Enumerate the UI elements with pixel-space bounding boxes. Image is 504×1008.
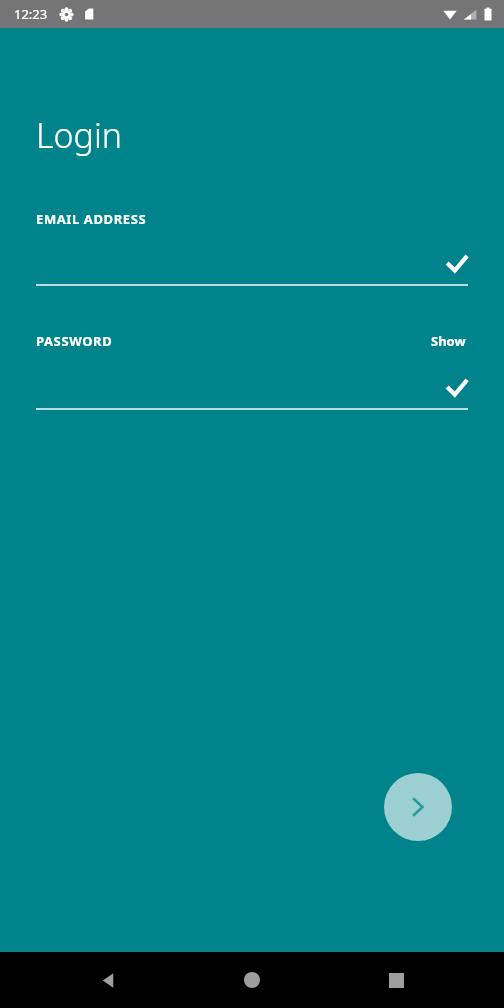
button[interactable]: Show (429, 330, 468, 352)
button[interactable] (36, 368, 468, 408)
staticText: EMAIL ADDRESS (36, 210, 147, 228)
staticText: 12:23 (14, 5, 48, 23)
button[interactable]: Home (228, 956, 276, 1004)
staticText: Show (431, 332, 466, 350)
staticText: PASSWORD (36, 332, 113, 350)
button[interactable]: Back (84, 956, 132, 1004)
staticText: Login (36, 112, 123, 158)
button[interactable] (36, 244, 468, 284)
button[interactable]: Continue (384, 773, 452, 841)
button[interactable]: Recent apps (372, 956, 420, 1004)
